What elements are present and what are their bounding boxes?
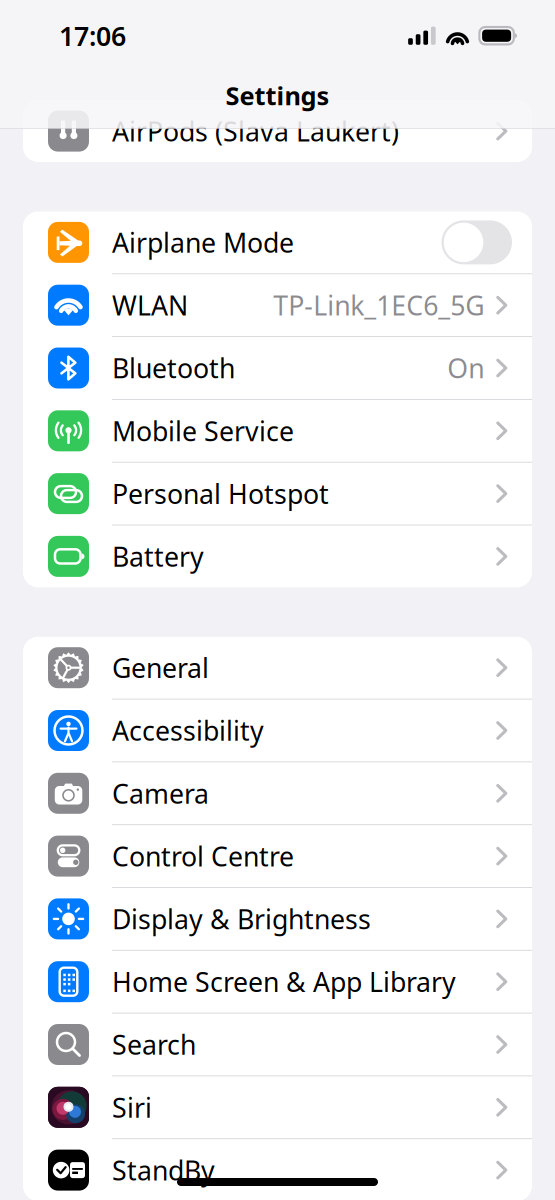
- staticText: WLAN: [112, 287, 188, 323]
- button[interactable]: Personal Hotspot: [23, 463, 532, 524]
- staticText: TP-Link_1EC6_5G: [273, 287, 484, 323]
- staticText: Bluetooth: [112, 350, 235, 386]
- button[interactable]: Accessibility: [23, 700, 532, 761]
- staticText: On: [447, 350, 484, 386]
- button[interactable]: Control Centre: [23, 825, 532, 887]
- button[interactable]: StandBy: [23, 1139, 532, 1200]
- staticText: Search: [112, 1027, 196, 1062]
- staticText: StandBy: [112, 1152, 215, 1188]
- button[interactable]: Camera: [23, 762, 532, 824]
- staticText: Accessibility: [112, 713, 264, 748]
- staticText: Display & Brightness: [112, 901, 371, 937]
- button[interactable]: Battery: [23, 525, 532, 587]
- button[interactable]: WLAN: [23, 274, 532, 336]
- staticText: AirPods (Slava Laukert): [112, 113, 399, 149]
- staticText: Personal Hotspot: [112, 476, 329, 511]
- staticText: Mobile Service: [112, 413, 294, 448]
- button[interactable]: Siri: [23, 1076, 532, 1138]
- button[interactable]: Airplane Mode: [23, 211, 532, 273]
- staticText: Airplane Mode: [112, 225, 294, 260]
- staticText: Siri: [112, 1090, 152, 1125]
- button[interactable]: Display & Brightness: [23, 888, 532, 950]
- staticText: General: [112, 650, 209, 685]
- button[interactable]: General: [23, 637, 532, 699]
- button[interactable]: Search: [23, 1014, 532, 1075]
- button[interactable]: Home Screen & App Library: [23, 951, 532, 1013]
- staticText: Home Screen & App Library: [112, 964, 456, 999]
- staticText: Settings: [225, 79, 329, 112]
- staticText: 17:06: [59, 18, 126, 53]
- button[interactable]: Bluetooth: [23, 337, 532, 399]
- button[interactable]: AirPods (Slava Laukert): [23, 100, 532, 162]
- button[interactable]: Mobile Service: [23, 400, 532, 462]
- staticText: Control Centre: [112, 838, 294, 874]
- staticText: Camera: [112, 776, 209, 811]
- staticText: Battery: [112, 539, 204, 574]
